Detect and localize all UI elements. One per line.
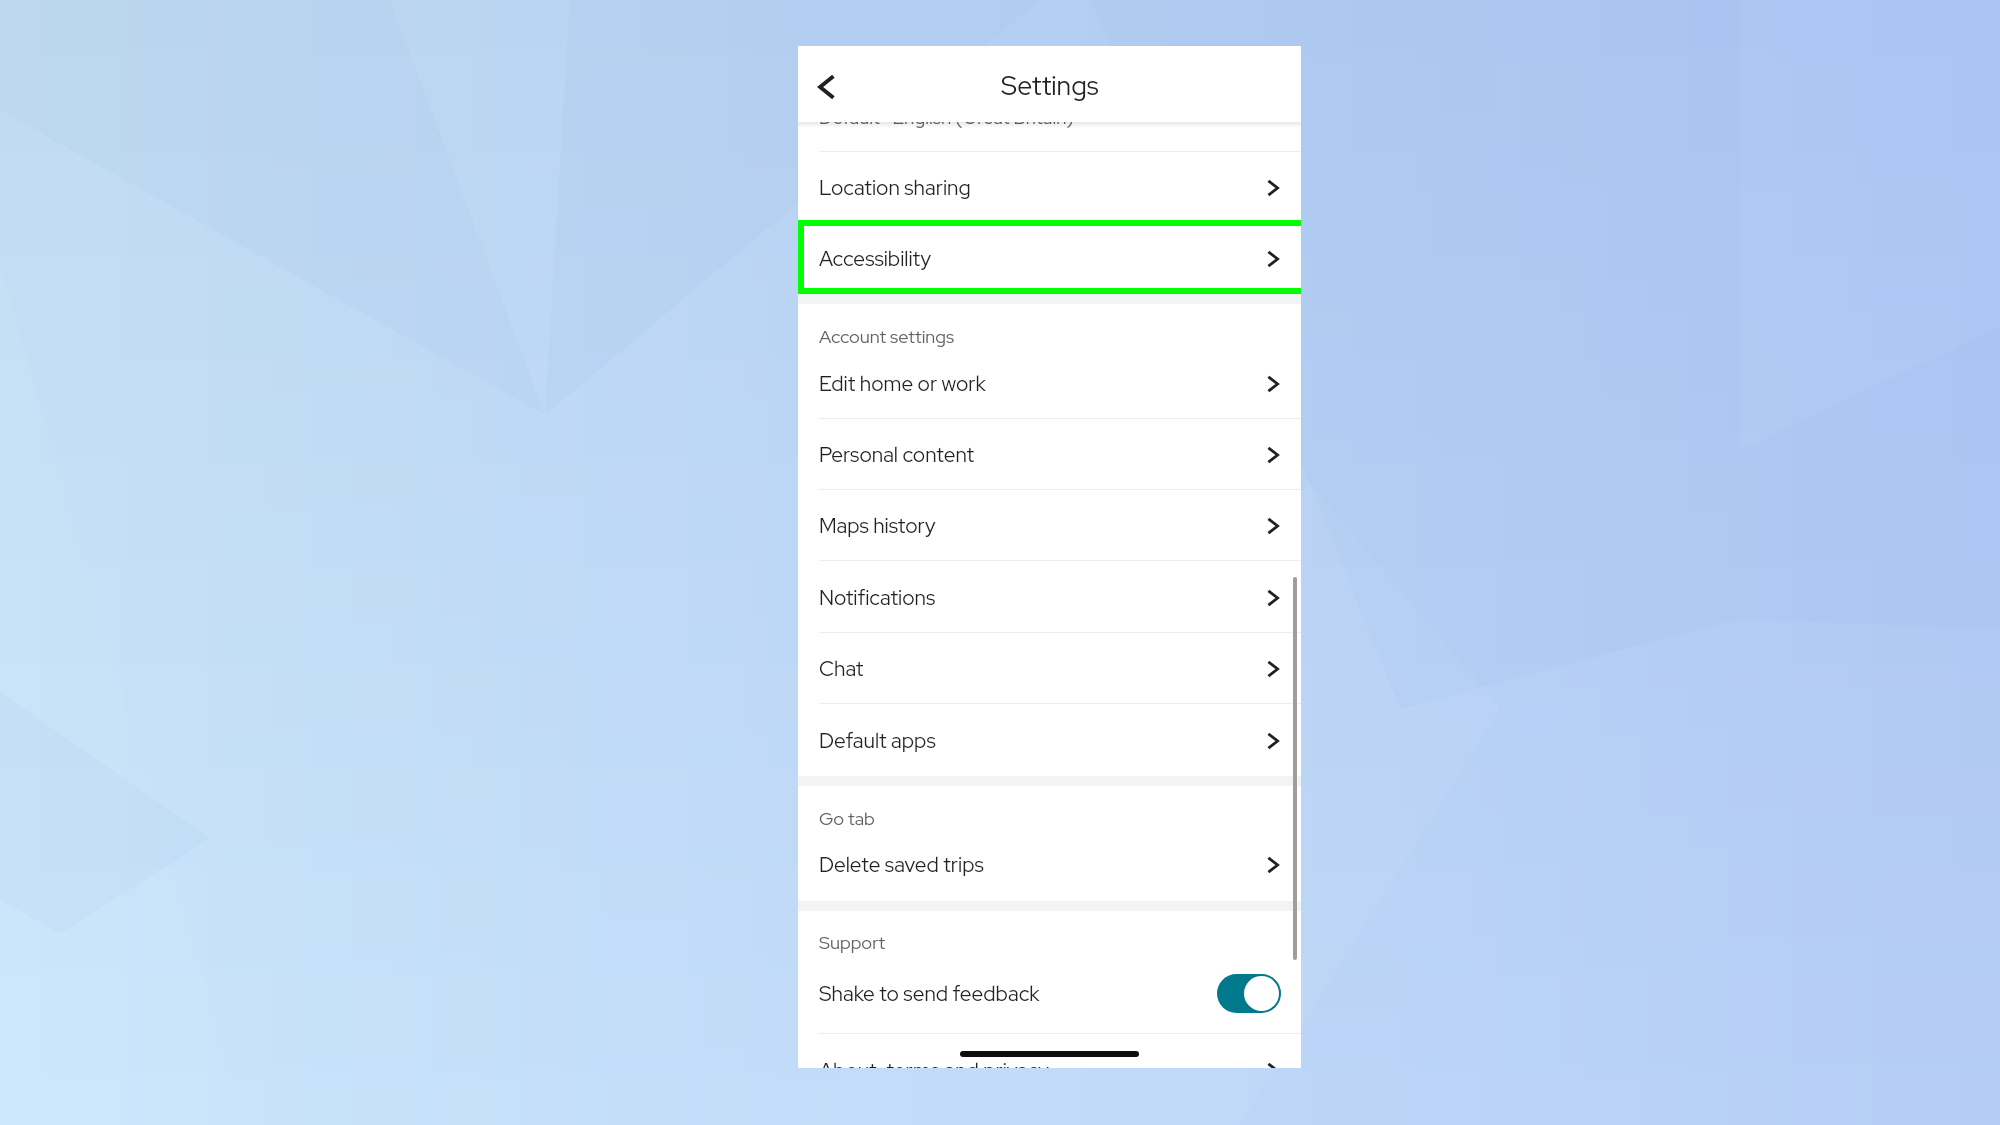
button[interactable]: Default apps (798, 705, 1301, 776)
staticText: Maps history (819, 512, 936, 540)
button[interactable]: Back (806, 63, 854, 111)
staticText: Edit home or work (819, 370, 986, 398)
button[interactable]: Chat (798, 633, 1301, 704)
button[interactable]: About, terms and privacy (798, 1035, 1301, 1068)
staticText: Location sharing (819, 174, 971, 202)
button[interactable]: Delete saved trips (798, 829, 1301, 901)
staticText: Notifications (819, 584, 936, 612)
button[interactable]: Personal content (798, 419, 1301, 490)
button[interactable]: Maps history (798, 490, 1301, 561)
staticText: Delete saved trips (819, 851, 984, 879)
staticText: Accessibility (819, 245, 932, 273)
button[interactable]: Location sharing (798, 152, 1301, 223)
button[interactable]: Edit home or work (798, 348, 1301, 419)
staticText: Personal content (819, 441, 975, 469)
staticText: Default apps (819, 727, 936, 755)
staticText: Default · English (Great Britain) (819, 105, 1074, 130)
staticText: Go tab (819, 806, 875, 830)
staticText: Account settings (819, 324, 955, 348)
staticText: About, terms and privacy (819, 1057, 1049, 1068)
button[interactable]: Accessibility (798, 223, 1301, 294)
staticText: Chat (819, 655, 864, 683)
button[interactable]: Shake to send feedback (798, 953, 1301, 1034)
staticText: Shake to send feedback (819, 980, 1040, 1008)
staticText: Support (819, 930, 886, 954)
button[interactable]: Shake to send feedback toggle (1217, 974, 1281, 1013)
staticText: Settings (1001, 68, 1099, 103)
button[interactable]: Notifications (798, 562, 1301, 633)
